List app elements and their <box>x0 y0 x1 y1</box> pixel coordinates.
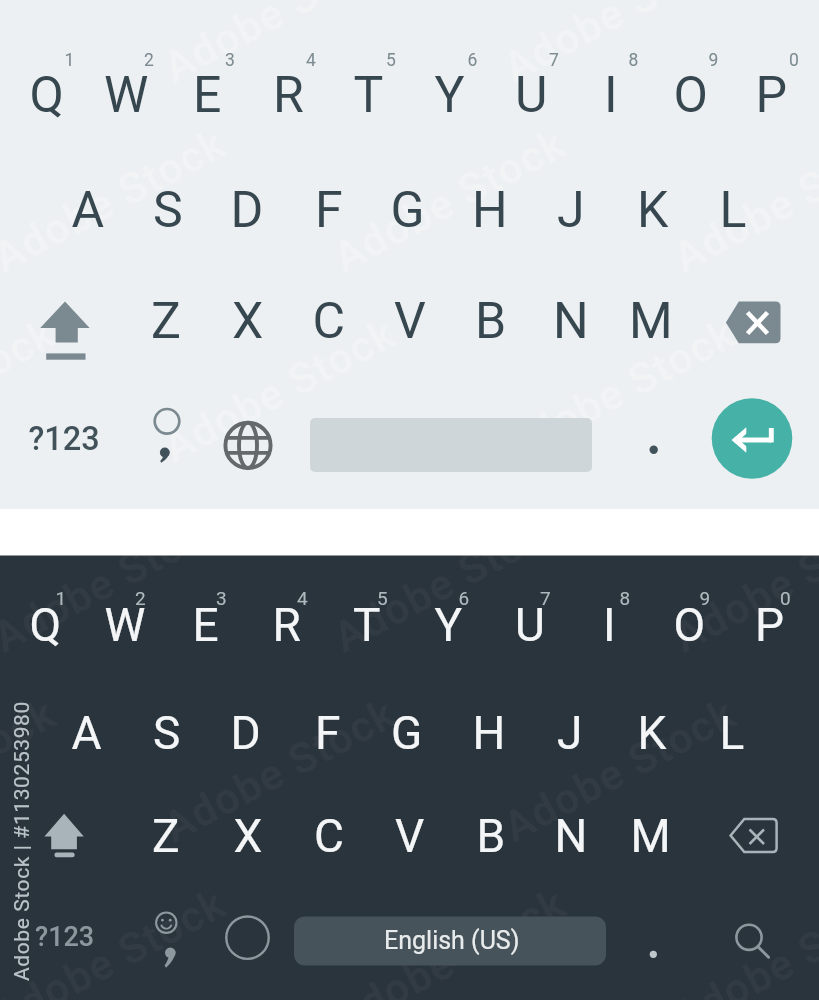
button[interactable] <box>7 40 87 150</box>
button[interactable] <box>208 890 288 995</box>
button[interactable] <box>712 398 794 480</box>
button[interactable] <box>126 267 206 377</box>
button[interactable] <box>451 785 531 890</box>
button[interactable] <box>24 267 104 377</box>
button[interactable] <box>294 916 606 966</box>
button[interactable] <box>491 572 571 677</box>
button[interactable] <box>571 40 651 150</box>
button[interactable] <box>370 785 450 890</box>
button[interactable] <box>693 680 773 785</box>
button[interactable] <box>613 385 693 495</box>
button[interactable] <box>693 155 773 265</box>
button[interactable] <box>410 40 490 150</box>
button[interactable] <box>370 267 450 377</box>
button[interactable] <box>24 385 104 495</box>
button[interactable] <box>167 40 247 150</box>
button[interactable] <box>126 785 206 890</box>
button[interactable] <box>731 572 811 677</box>
button[interactable] <box>613 890 693 995</box>
button[interactable] <box>289 155 369 265</box>
button[interactable] <box>710 890 790 995</box>
button[interactable] <box>207 155 287 265</box>
button[interactable] <box>128 155 208 265</box>
button[interactable] <box>450 155 530 265</box>
button[interactable] <box>713 785 793 890</box>
button[interactable] <box>128 680 208 785</box>
button[interactable] <box>126 385 206 495</box>
button[interactable] <box>208 385 288 495</box>
button[interactable] <box>651 40 731 150</box>
button[interactable] <box>86 572 166 677</box>
button[interactable] <box>611 785 691 890</box>
button[interactable] <box>289 680 369 785</box>
button[interactable] <box>713 267 793 377</box>
button[interactable] <box>613 680 693 785</box>
button[interactable] <box>328 572 408 677</box>
button[interactable] <box>571 572 651 677</box>
button[interactable] <box>24 785 104 890</box>
button[interactable] <box>368 155 448 265</box>
button[interactable] <box>450 680 530 785</box>
button[interactable] <box>531 680 611 785</box>
button[interactable] <box>24 890 104 995</box>
button[interactable] <box>368 680 448 785</box>
button[interactable] <box>126 890 206 995</box>
button[interactable] <box>491 40 571 150</box>
button[interactable] <box>248 572 328 677</box>
button[interactable] <box>167 572 247 677</box>
button[interactable] <box>613 155 693 265</box>
button[interactable] <box>531 785 611 890</box>
button[interactable] <box>651 572 731 677</box>
button[interactable] <box>248 40 328 150</box>
button[interactable] <box>531 155 611 265</box>
button[interactable] <box>731 40 811 150</box>
button[interactable] <box>289 267 369 377</box>
button[interactable] <box>451 267 531 377</box>
button[interactable] <box>531 267 611 377</box>
button[interactable] <box>208 267 288 377</box>
button[interactable] <box>48 680 128 785</box>
button[interactable] <box>207 680 287 785</box>
button[interactable] <box>611 267 691 377</box>
button[interactable] <box>289 785 369 890</box>
button[interactable] <box>328 40 408 150</box>
button[interactable] <box>7 572 87 677</box>
button[interactable] <box>410 572 490 677</box>
button[interactable] <box>48 155 128 265</box>
button[interactable] <box>86 40 166 150</box>
button[interactable] <box>208 785 288 890</box>
